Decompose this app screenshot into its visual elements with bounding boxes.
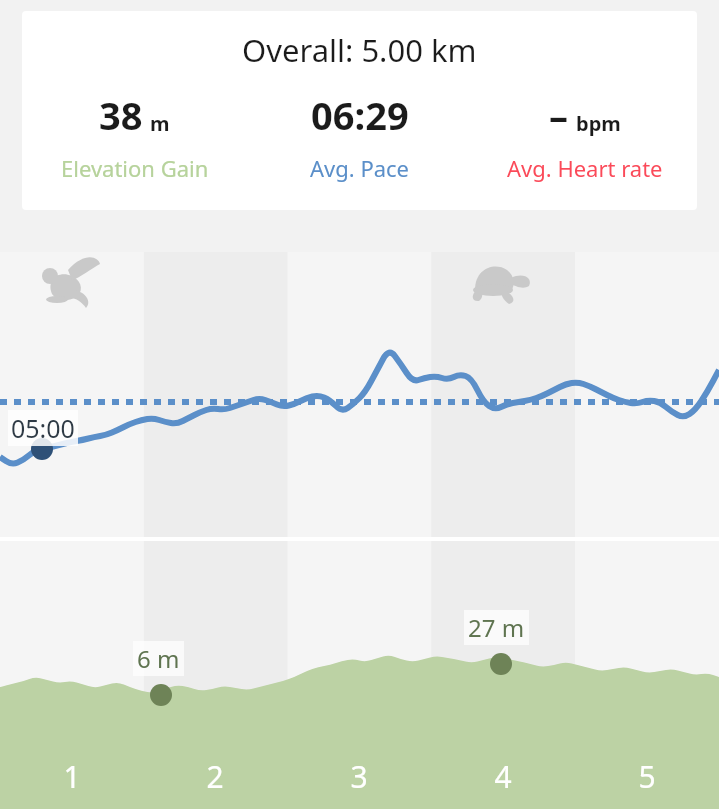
staticText: 4 — [494, 756, 512, 797]
staticText: – — [549, 89, 569, 141]
staticText: m — [150, 110, 170, 137]
staticText: 2 — [206, 756, 224, 797]
staticText: 06:29 — [311, 89, 409, 141]
button[interactable]: 05:00 — [0, 252, 719, 537]
staticText: 1 — [63, 756, 81, 797]
staticText: 5 — [638, 756, 656, 797]
staticText: Avg. Pace — [310, 153, 410, 183]
button[interactable]: 38 — [22, 89, 247, 183]
button[interactable]: 6 m — [0, 541, 719, 809]
staticText: 05:00 — [11, 411, 75, 445]
staticText: 6 m — [137, 642, 180, 675]
staticText: 27 m — [468, 611, 525, 644]
button[interactable]: 06:29 — [247, 89, 472, 183]
staticText: 38 — [99, 89, 143, 141]
staticText: 3 — [350, 756, 368, 797]
button[interactable]: Overall: 5.00 km — [22, 11, 697, 210]
staticText: bpm — [576, 110, 621, 137]
staticText: Elevation Gain — [61, 153, 209, 183]
button[interactable]: – — [472, 89, 697, 183]
staticText: Overall: 5.00 km — [242, 29, 477, 71]
staticText: Avg. Heart rate — [507, 153, 663, 183]
